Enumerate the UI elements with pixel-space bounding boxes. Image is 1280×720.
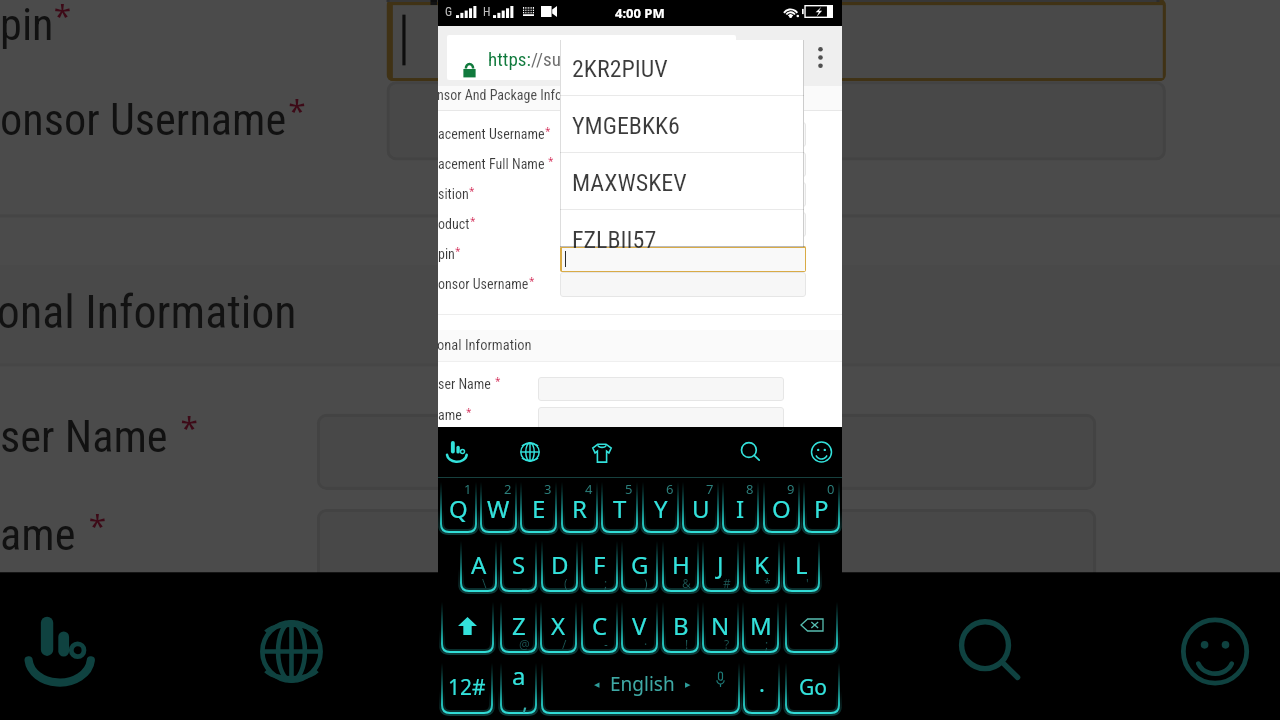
button[interactable]: Emoji [1137,572,1280,720]
button[interactable] [317,509,1096,585]
button[interactable]: Z [500,602,537,653]
button[interactable]: Search [724,427,774,477]
button[interactable]: K [743,541,780,592]
button[interactable]: More options [798,35,842,79]
button[interactable] [785,602,838,653]
staticText: 2KR2PIUV [572,55,668,83]
button[interactable]: Change language [212,572,371,720]
button[interactable]: YMGEBKK6 [560,97,804,154]
staticText: * [288,87,307,132]
staticText: sition [438,186,469,202]
button[interactable]: M [742,602,779,653]
staticText: ser Name [0,411,181,461]
button[interactable]: C [581,602,618,653]
button[interactable]: U [682,482,719,533]
staticText: YMGEBKK6 [572,112,680,140]
staticText: 5 [625,480,633,498]
button[interactable] [386,81,1166,160]
staticText: ame [438,407,466,423]
button[interactable]: · [743,663,780,714]
staticText: FZLBII57 [425,0,694,24]
staticText: 3 [544,480,552,498]
staticText: https: [488,48,531,70]
staticText: Y [654,492,668,525]
button[interactable]: Theme [440,572,599,720]
button[interactable]: R [561,482,598,533]
button[interactable]: ◂ [541,663,740,714]
button[interactable]: V [621,602,658,653]
button[interactable] [386,0,1166,81]
button[interactable]: Emoji [797,427,847,477]
staticText: ◂ [594,678,600,691]
button[interactable]: E [520,482,557,533]
button[interactable]: MAXWSKEV [560,154,804,211]
button[interactable] [317,414,1096,490]
staticText: * [455,244,461,258]
staticText: a [512,659,526,692]
staticText: I [736,492,745,525]
staticText: U [692,492,710,525]
button[interactable]: Y [642,482,679,533]
staticText: 6 [666,480,674,498]
staticText: nsor And Package Inform [437,87,577,103]
button[interactable] [560,212,806,237]
button[interactable]: FZLBII57 [386,0,1160,68]
staticText: _ [522,575,528,591]
staticText: ; [765,636,769,652]
button[interactable]: Search [906,572,1064,720]
staticText: pin [438,246,455,262]
staticText: English [610,671,675,697]
button[interactable]: W [480,482,517,533]
button[interactable]: FZLBII57 [560,211,804,268]
staticText: * [89,503,108,547]
button[interactable]: S [500,541,537,592]
button[interactable]: I [722,482,759,533]
staticText: * [495,374,501,388]
button[interactable]: H [662,541,699,592]
staticText: Z [512,609,526,642]
button[interactable]: G [621,541,658,592]
staticText: onal Information [0,287,298,341]
staticText: 12# [448,673,486,702]
staticText: · [644,636,648,652]
button[interactable]: A [460,541,497,592]
button[interactable] [560,152,806,177]
button[interactable]: T [601,482,638,533]
button[interactable]: L [783,541,820,592]
button[interactable] [560,246,806,272]
staticText: T [613,492,627,525]
staticText: H [483,5,491,19]
button[interactable] [538,407,784,431]
button[interactable] [538,377,784,401]
button[interactable]: Keyboard menu [432,427,482,477]
button[interactable]: N [702,602,739,653]
button[interactable]: Change language [505,427,555,477]
button[interactable] [560,272,806,297]
staticText: oduct [438,216,470,232]
button[interactable]: 2KR2PIUV [560,40,804,97]
staticText: 4 [585,480,593,498]
button[interactable]: Theme [577,427,627,477]
button[interactable]: D [541,541,578,592]
button[interactable]: Go [785,663,840,714]
button[interactable]: O [763,482,800,533]
button[interactable]: https: [447,35,736,80]
staticText: ? [724,636,730,652]
staticText: C [592,609,608,642]
staticText: P [814,492,829,525]
button[interactable] [441,602,494,653]
button[interactable]: Q [440,482,477,533]
button[interactable]: J [702,541,739,592]
button[interactable] [560,182,806,207]
button[interactable]: 12# [441,663,493,714]
button[interactable]: F [581,541,618,592]
button[interactable] [560,122,806,147]
staticText: N [711,609,730,642]
button[interactable]: Keyboard menu [0,572,139,720]
staticText: pin [0,0,54,49]
button[interactable]: P [803,482,840,533]
button[interactable]: X [540,602,577,653]
button[interactable]: B [662,602,699,653]
button[interactable]: a [500,663,537,714]
staticText: D [551,548,569,581]
